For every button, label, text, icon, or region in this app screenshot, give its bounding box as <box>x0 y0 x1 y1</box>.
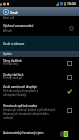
staticText: Přehrát zvuky při zamykání a odemykání d… <box>3 89 39 97</box>
button[interactable]: Zvuky tlačítek <box>0 71 79 84</box>
button[interactable]: Sound settings <box>3 9 19 15</box>
button[interactable]: Vyzváněcí tón <box>0 8 79 21</box>
staticText: Zvuk <box>10 10 19 15</box>
staticText: Zvuk a vibrace <box>3 42 25 46</box>
button[interactable]: Toggle automatic haptic feedback <box>60 131 68 137</box>
staticText: Systém <box>3 52 12 56</box>
button[interactable]: Hmatová zpětná vazba <box>0 102 79 120</box>
button[interactable]: Tóny tlačítek <box>0 57 79 71</box>
button[interactable]: Automatický hmatový vjem <box>0 128 79 140</box>
button[interactable]: Notification sound <box>69 26 74 31</box>
staticText: Basic call <box>3 16 15 20</box>
button[interactable]: Výchozí oznamování <box>0 21 79 36</box>
button[interactable]: Unchecked <box>67 61 72 66</box>
staticText: Přehrát zvuk při <box>3 76 63 80</box>
button[interactable]: Checked <box>67 89 72 94</box>
staticText: Whistle <box>3 29 12 33</box>
staticText: Hmatová zpětná vazba <box>3 104 38 108</box>
staticText: Přehrát tóny <box>3 62 63 66</box>
button[interactable]: Zvuk zamknutí displeje <box>0 84 79 101</box>
button[interactable]: Unchecked <box>67 75 72 80</box>
button[interactable]: Unchecked <box>67 108 72 113</box>
staticText: 10:34 <box>67 1 76 6</box>
staticText: Automatický hmatový vjem <box>3 131 44 135</box>
staticText: Zvuk zamknutí displeje <box>3 85 38 89</box>
staticText: Vibrace při stisknutí tlačítek a při něk… <box>3 108 56 120</box>
staticText: Tóny tlačítek <box>3 59 22 63</box>
staticText: Zvuky tlačítek <box>3 73 24 77</box>
staticText: Vyzváněcí tón <box>3 9 24 13</box>
staticText: Výchozí oznamování <box>3 24 34 28</box>
other: Sound settings <box>3 9 9 15</box>
